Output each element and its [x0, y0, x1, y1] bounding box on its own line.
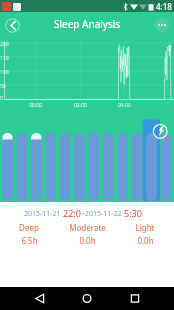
staticText: 2015-11-21 — [24, 209, 63, 219]
staticText: 22:0 — [63, 207, 81, 219]
staticText: 100 — [0, 69, 9, 76]
button[interactable]: Back — [5, 18, 20, 33]
button[interactable]: Back — [28, 287, 52, 310]
staticText: Light — [135, 222, 155, 233]
staticText: 6.5h — [21, 235, 38, 246]
staticText: 150 — [0, 55, 9, 62]
button[interactable]: More options — [155, 18, 169, 32]
staticText: Sleep Analysis — [54, 17, 121, 31]
staticText: 50 — [0, 83, 6, 90]
button[interactable]: Deep — [0, 222, 58, 246]
staticText: 0.0h — [79, 235, 96, 246]
button[interactable]: Home — [75, 287, 99, 310]
staticText: Moderate — [69, 222, 106, 233]
button[interactable]: Light — [116, 222, 174, 246]
button[interactable]: Moderate — [58, 222, 116, 246]
staticText: 200 — [0, 41, 9, 48]
staticText: 02:00 — [74, 102, 87, 109]
staticText: 04:00 — [118, 102, 131, 109]
staticText: 4:18 — [156, 1, 172, 12]
staticText: ~2015-11-22 — [81, 209, 124, 219]
staticText: 00:00 — [29, 102, 42, 109]
staticText: 5:30 — [124, 207, 142, 219]
staticText: 0.0h — [137, 235, 154, 246]
button[interactable]: Recents — [123, 287, 147, 310]
staticText: Deep — [19, 222, 39, 233]
staticText: 0 — [0, 95, 3, 102]
